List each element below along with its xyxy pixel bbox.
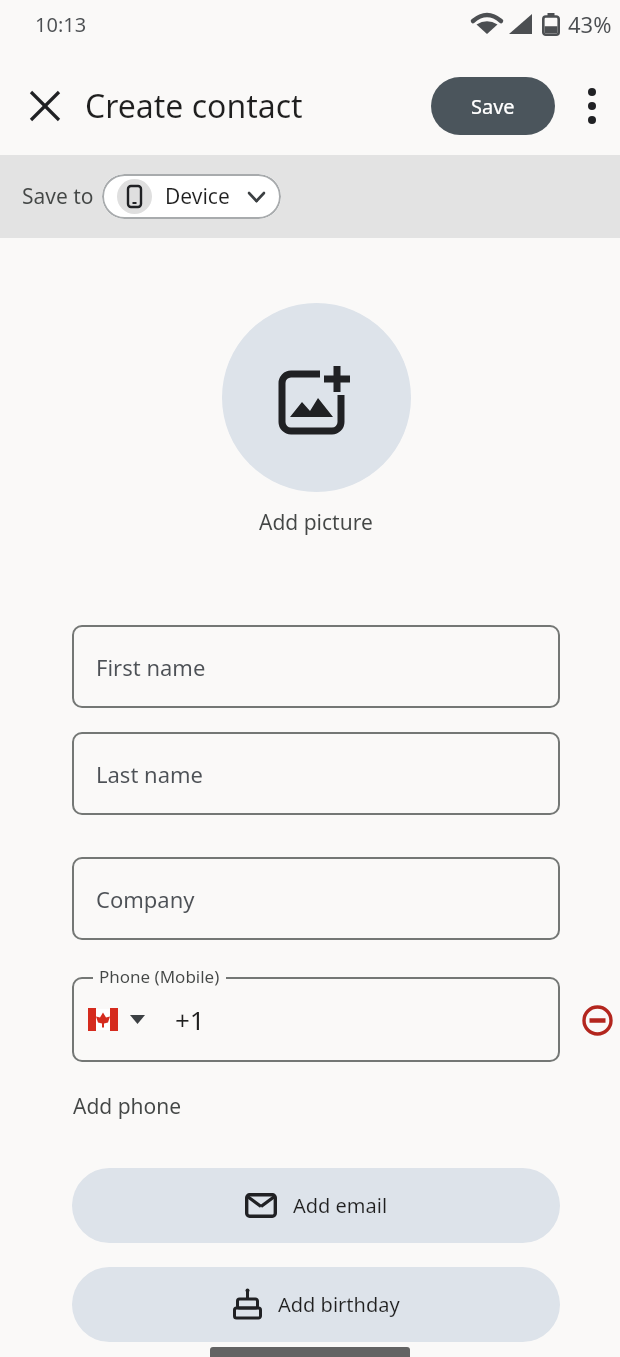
staticText: Company [96, 884, 195, 914]
staticText: First name [96, 652, 206, 682]
staticText: Create contact [85, 84, 303, 128]
staticText: Save to [22, 182, 94, 211]
button[interactable]: Add phone [73, 1092, 182, 1121]
button[interactable]: Last name [72, 732, 560, 815]
staticText: 43% [568, 9, 612, 39]
button[interactable]: Add email [72, 1168, 560, 1243]
staticText: Add email [293, 1192, 388, 1219]
button[interactable]: Add picture [259, 508, 373, 537]
button[interactable]: Add birthday [72, 1267, 560, 1342]
staticText: 10:13 [35, 11, 87, 38]
button[interactable]: +1 [72, 977, 560, 1062]
button[interactable]: Save [431, 77, 555, 135]
staticText: +1 [175, 1002, 205, 1037]
staticText: Device [165, 182, 230, 211]
staticText: Save [471, 93, 515, 120]
button[interactable] [585, 87, 599, 125]
button[interactable]: First name [72, 625, 560, 708]
button[interactable] [30, 91, 60, 121]
button[interactable] [582, 1005, 613, 1036]
button[interactable] [222, 303, 411, 492]
staticText: Phone (Mobile) [99, 965, 220, 988]
button[interactable]: Device [102, 174, 281, 219]
staticText: Last name [96, 759, 203, 789]
button[interactable]: Company [72, 857, 560, 940]
staticText: Add birthday [278, 1291, 400, 1318]
